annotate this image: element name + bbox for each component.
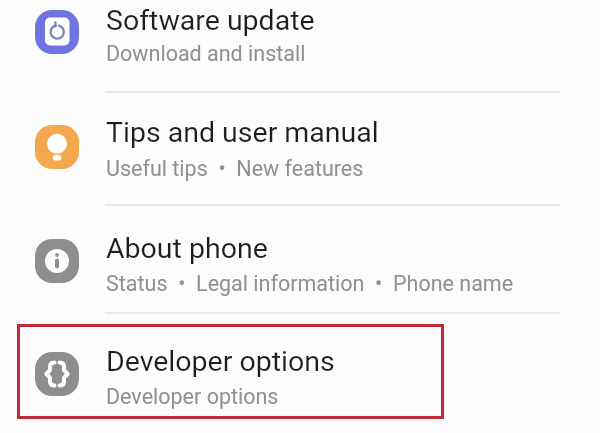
button[interactable]: Developer options [0, 314, 600, 433]
staticText: Download and install [106, 41, 306, 66]
staticText: About phone [106, 232, 268, 265]
staticText: Software update [106, 4, 315, 37]
staticText: Useful tips • New features [106, 156, 364, 181]
button[interactable]: Tips and user manual [0, 93, 600, 204]
staticText: Developer options [106, 384, 279, 409]
staticText: Developer options [106, 345, 335, 378]
staticText: Tips and user manual [106, 116, 379, 149]
button[interactable]: Software update [0, 0, 600, 91]
staticText: Status • Legal information • Phone name [106, 271, 514, 296]
button[interactable]: About phone [0, 206, 600, 313]
